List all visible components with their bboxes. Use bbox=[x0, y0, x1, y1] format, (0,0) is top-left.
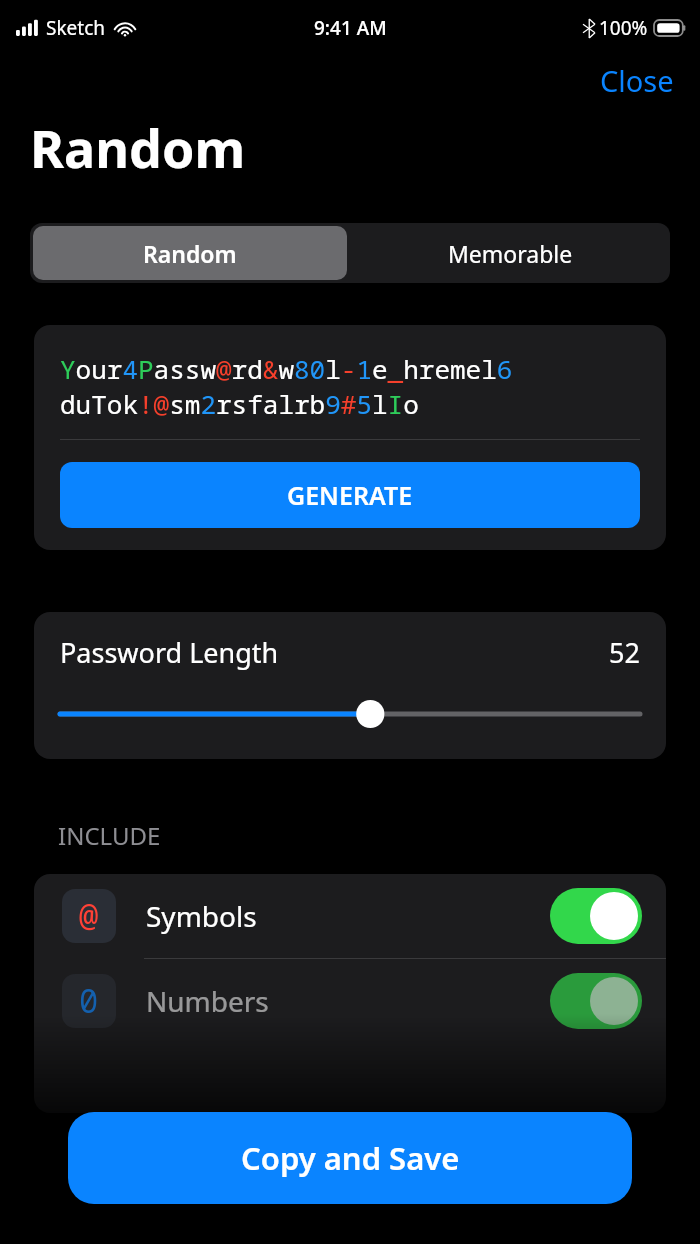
staticText: GENERATE bbox=[287, 478, 413, 512]
staticText: Sketch bbox=[46, 15, 106, 41]
staticText: 52 bbox=[609, 634, 640, 671]
button[interactable]: 0 bbox=[34, 959, 666, 1043]
staticText: Close bbox=[600, 61, 674, 100]
button[interactable]: Toggle bbox=[550, 973, 642, 1029]
staticText: duTok!@sm2rsfalrb9#5lIo bbox=[60, 386, 419, 421]
button[interactable]: Random bbox=[33, 226, 347, 280]
staticText: INCLUDE bbox=[58, 819, 161, 852]
staticText: 100% bbox=[599, 15, 648, 41]
staticText: Copy and Save bbox=[241, 1137, 460, 1179]
button[interactable]: Toggle bbox=[550, 888, 642, 944]
staticText: Memorable bbox=[448, 238, 573, 269]
button[interactable]: Memorable bbox=[350, 223, 670, 283]
staticText: Password Length bbox=[60, 634, 279, 671]
button[interactable]: @ bbox=[34, 874, 666, 958]
staticText: Numbers bbox=[146, 982, 269, 1020]
staticText: 9:41 AM bbox=[314, 15, 387, 41]
button[interactable]: Copy and Save bbox=[68, 1112, 632, 1204]
staticText: Random bbox=[143, 238, 237, 269]
button[interactable]: Close bbox=[600, 61, 674, 100]
button[interactable]: Password length slider bbox=[60, 699, 640, 729]
staticText: Random bbox=[30, 112, 246, 183]
button[interactable]: GENERATE bbox=[60, 462, 640, 528]
staticText: 0 bbox=[79, 979, 99, 1023]
staticText: Your4Passw@rd&w80l-1e_hremel6 bbox=[60, 351, 513, 386]
staticText: @ bbox=[79, 894, 99, 938]
staticText: Symbols bbox=[146, 897, 257, 935]
